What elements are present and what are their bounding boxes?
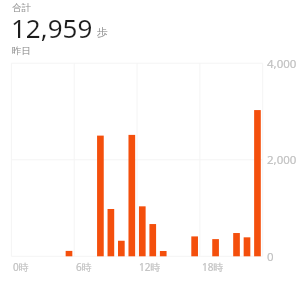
other: Hourly step chart: [0, 0, 300, 285]
staticText: 昨日: [12, 45, 31, 57]
staticText: 0時: [13, 260, 29, 274]
staticText: 合計: [12, 2, 31, 14]
staticText: 0: [267, 249, 274, 265]
staticText: 12,959: [11, 10, 93, 45]
staticText: 18時: [202, 260, 224, 274]
staticText: 12時: [139, 260, 161, 274]
staticText: 歩: [97, 25, 108, 39]
staticText: 4,000: [267, 56, 297, 72]
staticText: 6時: [76, 260, 92, 274]
staticText: 2,000: [267, 152, 297, 168]
